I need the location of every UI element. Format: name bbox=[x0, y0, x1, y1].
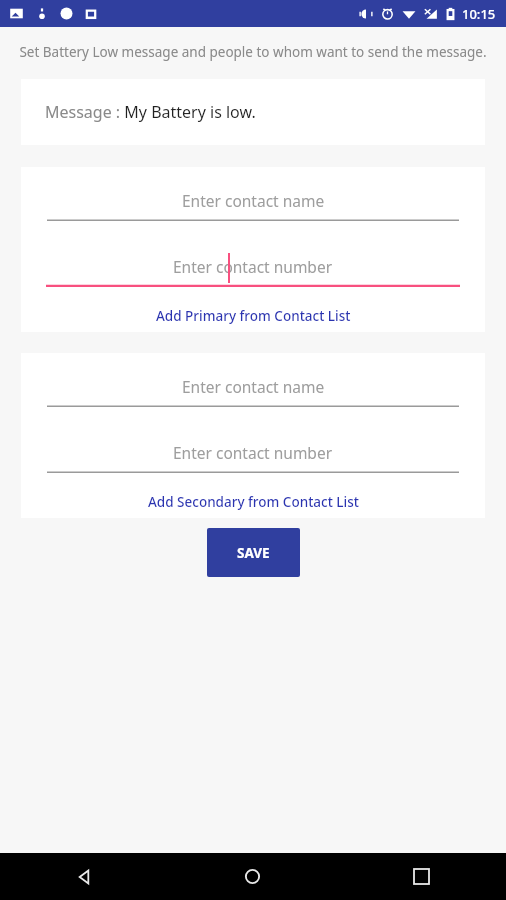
staticText: SAVE bbox=[237, 544, 270, 562]
staticText: Message : My Battery is low. bbox=[45, 101, 256, 123]
button[interactable]: Enter contact number bbox=[47, 437, 459, 474]
button[interactable]: Recent apps bbox=[337, 853, 506, 900]
staticText: Enter contact number bbox=[173, 256, 333, 277]
staticText: 10:15 bbox=[462, 5, 496, 23]
staticText: Add Primary from Contact List bbox=[156, 307, 351, 325]
button[interactable]: Add Secondary from Contact List bbox=[136, 489, 371, 515]
staticText: Set Battery Low message and people to wh… bbox=[14, 43, 492, 61]
button[interactable]: Add Primary from Contact List bbox=[144, 303, 363, 329]
button[interactable]: SAVE bbox=[207, 528, 300, 577]
button[interactable]: Enter contact number bbox=[46, 251, 460, 288]
staticText: Enter contact number bbox=[173, 442, 333, 463]
button[interactable]: Enter contact name bbox=[47, 371, 459, 408]
button[interactable]: Home bbox=[168, 853, 337, 900]
button[interactable]: Message : My Battery is low. bbox=[21, 79, 485, 145]
button[interactable]: Back bbox=[0, 853, 168, 900]
staticText: Add Secondary from Contact List bbox=[148, 493, 359, 511]
button[interactable]: Enter contact name bbox=[47, 185, 459, 222]
staticText: Enter contact name bbox=[182, 190, 325, 211]
staticText: Enter contact name bbox=[182, 376, 325, 397]
